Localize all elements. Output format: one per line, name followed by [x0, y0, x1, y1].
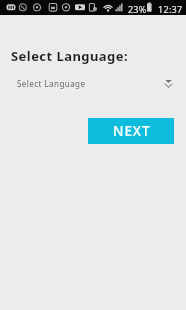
staticText: 23%	[128, 3, 147, 15]
staticText: Select Language:	[11, 47, 129, 65]
staticText: Select Language	[17, 78, 86, 89]
button[interactable]: Select Language	[0, 74, 186, 92]
staticText: NEXT	[113, 122, 151, 140]
button[interactable]: NEXT	[88, 118, 174, 144]
other: Expand	[164, 79, 173, 88]
staticText: 12:37	[158, 3, 183, 15]
